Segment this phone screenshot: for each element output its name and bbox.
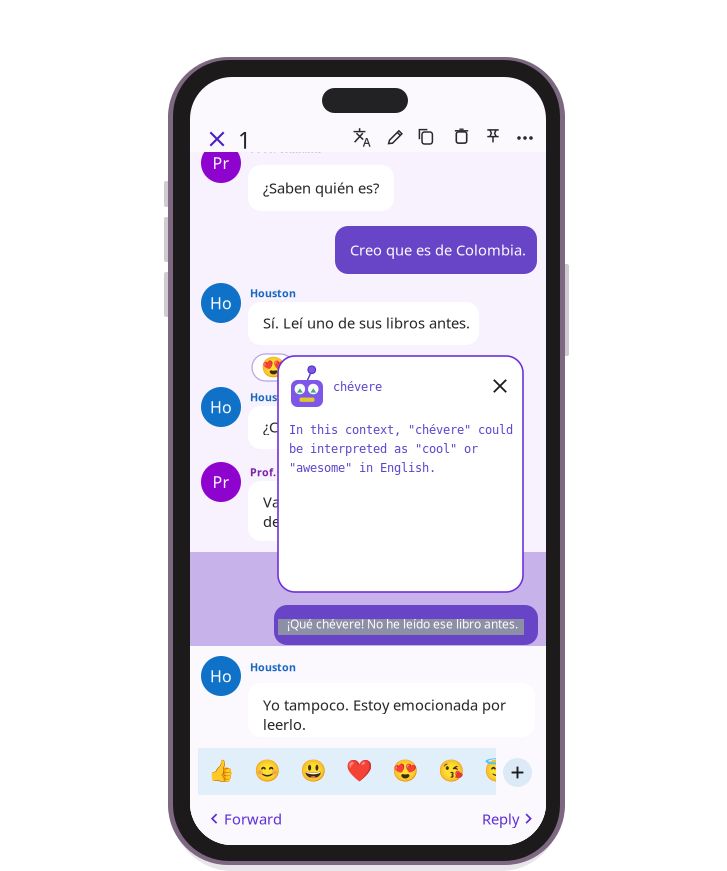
staticText: 😘 bbox=[438, 759, 465, 783]
button[interactable]: Close bbox=[208, 130, 226, 148]
staticText: ¿Saben quién es? bbox=[263, 178, 379, 197]
staticText: Prof. Williams bbox=[250, 465, 322, 479]
button[interactable]: Add reaction bbox=[503, 758, 532, 787]
staticText: In this context, "chévere" could bbox=[289, 423, 513, 437]
staticText: Ho bbox=[210, 665, 232, 687]
staticText: Sí. Leí uno de sus libros antes. bbox=[263, 313, 470, 332]
button[interactable]: Edit bbox=[387, 128, 404, 145]
button[interactable]: Copy bbox=[417, 128, 434, 145]
button[interactable]: Pin bbox=[486, 128, 500, 144]
staticText: Houston bbox=[250, 390, 296, 404]
staticText: ¿Cómo se dice? bbox=[263, 417, 367, 436]
staticText: 1 bbox=[238, 125, 251, 155]
staticText: 😍 bbox=[392, 759, 419, 783]
button[interactable]: Reply bbox=[482, 809, 532, 828]
button[interactable]: Close explanation bbox=[491, 377, 509, 395]
button[interactable]: Forward bbox=[211, 809, 282, 828]
staticText: Reply bbox=[482, 809, 519, 828]
staticText: Houston bbox=[250, 286, 296, 300]
staticText: "awesome" in English. bbox=[289, 461, 436, 475]
staticText: Pr bbox=[212, 152, 229, 174]
staticText: Houston bbox=[250, 660, 296, 674]
staticText: be interpreted as "cool" or bbox=[289, 442, 478, 456]
staticText: ¡Qué chévere! No he leído ese libro ante… bbox=[287, 616, 518, 632]
staticText: Vamos a ver el detalle de esto. bbox=[263, 492, 367, 531]
staticText: 😃 bbox=[300, 759, 327, 783]
staticText: chévere bbox=[333, 380, 382, 394]
staticText: Yo tampoco. Estoy emocionada por leerlo. bbox=[263, 695, 506, 734]
staticText: Pr bbox=[212, 471, 229, 493]
staticText: 👍 bbox=[208, 759, 235, 783]
staticText: Ho bbox=[210, 396, 232, 418]
staticText: 😊 bbox=[254, 759, 281, 783]
staticText: 😍 bbox=[260, 356, 285, 379]
staticText: Prof. Williams bbox=[250, 141, 322, 155]
staticText: 😇 bbox=[484, 759, 511, 783]
button[interactable]: Delete bbox=[454, 127, 469, 144]
staticText: Creo que es de Colombia. bbox=[350, 240, 526, 259]
staticText: ❤️ bbox=[346, 759, 373, 783]
button[interactable]: More bbox=[518, 130, 532, 146]
staticText: Ho bbox=[210, 292, 232, 314]
button[interactable]: Translate bbox=[353, 127, 372, 146]
staticText: A bbox=[363, 134, 371, 150]
staticText: Forward bbox=[224, 809, 282, 828]
